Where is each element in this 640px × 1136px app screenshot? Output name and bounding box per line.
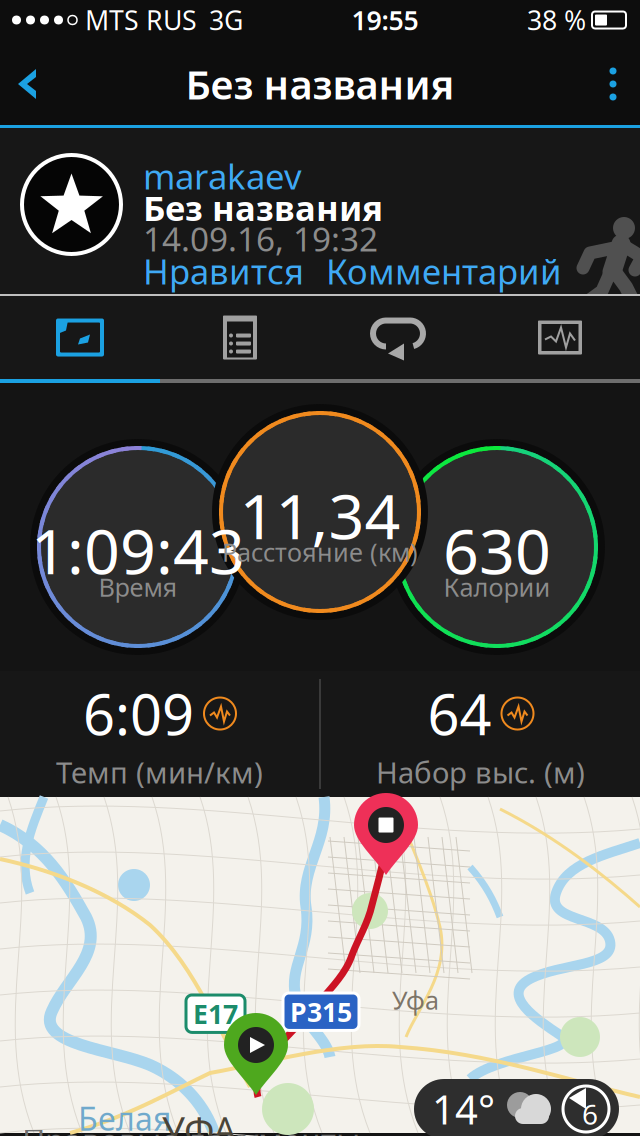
staticText: Без названия [143, 184, 383, 230]
staticText: P315 [290, 994, 352, 1029]
staticText: 64 [427, 676, 491, 751]
staticText: Нравится [143, 248, 304, 294]
staticText: 19:55 [351, 2, 418, 38]
staticText: Расстояние (км) [222, 535, 418, 569]
button[interactable]: Laps [320, 296, 480, 379]
staticText: Время [98, 570, 177, 604]
staticText: Калории [443, 570, 550, 604]
staticText: Темп (мин/км) [56, 753, 263, 792]
button[interactable]: Map [0, 296, 160, 379]
button[interactable]: More options [586, 54, 640, 114]
staticText: 6:09 [83, 676, 194, 751]
staticText: 6 [582, 1095, 598, 1133]
button[interactable]: Details [160, 296, 320, 379]
button[interactable]: Нравится [143, 254, 304, 288]
staticText: marakaev [143, 153, 302, 199]
staticText: 38 % [527, 2, 586, 38]
staticText: Комментарий [326, 248, 562, 294]
staticText: Без названия [185, 57, 454, 110]
staticText: 1:09:43 [31, 508, 245, 592]
staticText: Правовые документы [22, 1119, 360, 1136]
staticText: Уфа [392, 983, 439, 1017]
staticText: MTS RUS [85, 2, 197, 38]
button[interactable]: Back [0, 54, 54, 114]
staticText: Набор выс. (м) [376, 753, 585, 792]
staticText: E17 [193, 996, 238, 1031]
staticText: 11,34 [239, 473, 400, 557]
staticText: 14.09.16, 19:32 [143, 216, 378, 261]
staticText: УФА [162, 1105, 237, 1136]
staticText: 3G [209, 2, 243, 38]
staticText: 630 [443, 508, 551, 592]
staticText: Белая [78, 1097, 171, 1136]
button[interactable]: Комментарий [304, 254, 562, 288]
button[interactable]: Graphs [480, 296, 640, 379]
staticText: 14° [432, 1082, 495, 1135]
